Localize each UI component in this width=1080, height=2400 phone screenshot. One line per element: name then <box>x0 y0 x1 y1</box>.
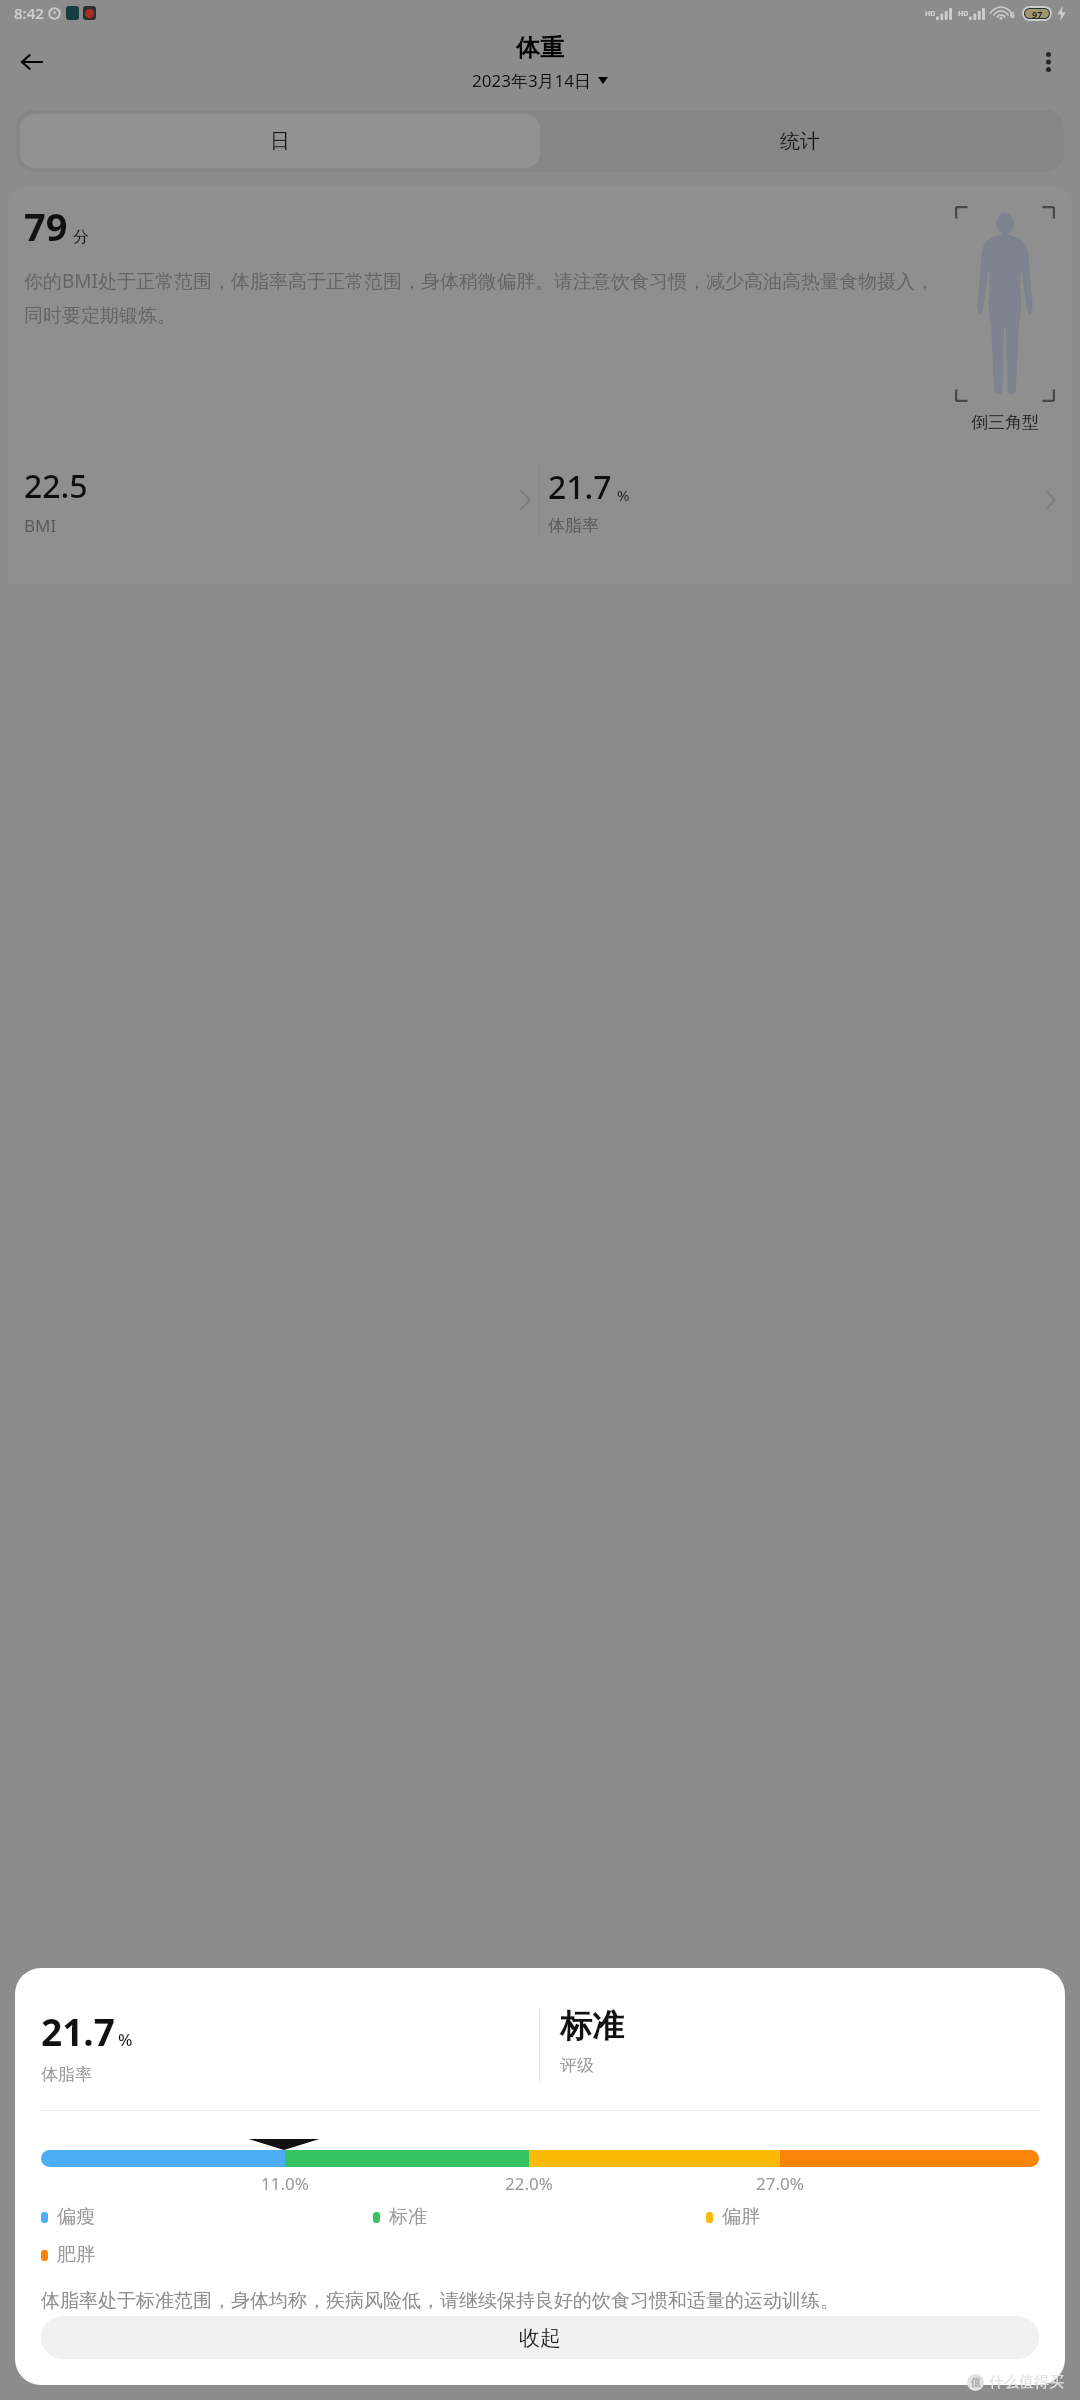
staticText: HD <box>925 9 936 19</box>
staticText: 体脂率处于标准范围，身体均称，疾病风险低，请继续保持良好的饮食习惯和适量的运动训… <box>41 2289 1039 2313</box>
staticText: 体脂率 <box>548 515 599 536</box>
staticText: 日 <box>270 129 290 154</box>
staticText: 8:42 <box>14 3 44 23</box>
staticText: 97 <box>1032 8 1043 19</box>
button[interactable]: 返回 <box>8 38 56 86</box>
staticText: 什么值得买 <box>989 2373 1064 2392</box>
staticText: 标准 <box>560 2006 624 2046</box>
staticText: 21.7 <box>41 2006 115 2056</box>
button[interactable]: 更多 <box>1026 40 1070 84</box>
staticText: HD <box>958 9 969 19</box>
staticText: 27.0% <box>754 2172 806 2195</box>
staticText: 79 <box>24 200 68 252</box>
staticText: % <box>617 485 630 505</box>
staticText: 倒三角型 <box>971 412 1039 433</box>
staticText: 2023年3月14日 <box>472 69 592 92</box>
staticText: BMI <box>24 514 57 537</box>
staticText: 评级 <box>560 2055 594 2076</box>
staticText: 11.0% <box>259 2172 311 2195</box>
staticText: 体重 <box>516 33 564 63</box>
staticText: % <box>118 2028 133 2051</box>
staticText: 22.5 <box>24 464 88 508</box>
button[interactable]: 收起 <box>41 2316 1039 2359</box>
button[interactable]: 21.7 <box>540 455 1064 545</box>
staticText: 22.0% <box>503 2172 555 2195</box>
staticText: 21.7 <box>548 465 612 509</box>
staticText: 肥胖 <box>57 2243 95 2267</box>
button[interactable]: 2023年3月14日 <box>472 69 608 92</box>
staticText: 偏瘦 <box>57 2205 95 2229</box>
button[interactable]: 22.5 <box>16 455 539 545</box>
staticText: 统计 <box>780 129 820 154</box>
button[interactable]: 日 <box>20 114 540 168</box>
staticText: 值 <box>971 2376 981 2389</box>
staticText: 体脂率 <box>41 2064 92 2085</box>
button[interactable]: 统计 <box>540 114 1060 168</box>
staticText: 6 <box>1010 9 1015 20</box>
staticText: 你的BMI处于正常范围，体脂率高于正常范围，身体稍微偏胖。请注意饮食习惯，减少高… <box>24 268 940 327</box>
staticText: 分 <box>73 227 89 247</box>
staticText: 标准 <box>389 2205 427 2229</box>
staticText: 收起 <box>519 2325 561 2351</box>
staticText: 偏胖 <box>722 2205 760 2229</box>
